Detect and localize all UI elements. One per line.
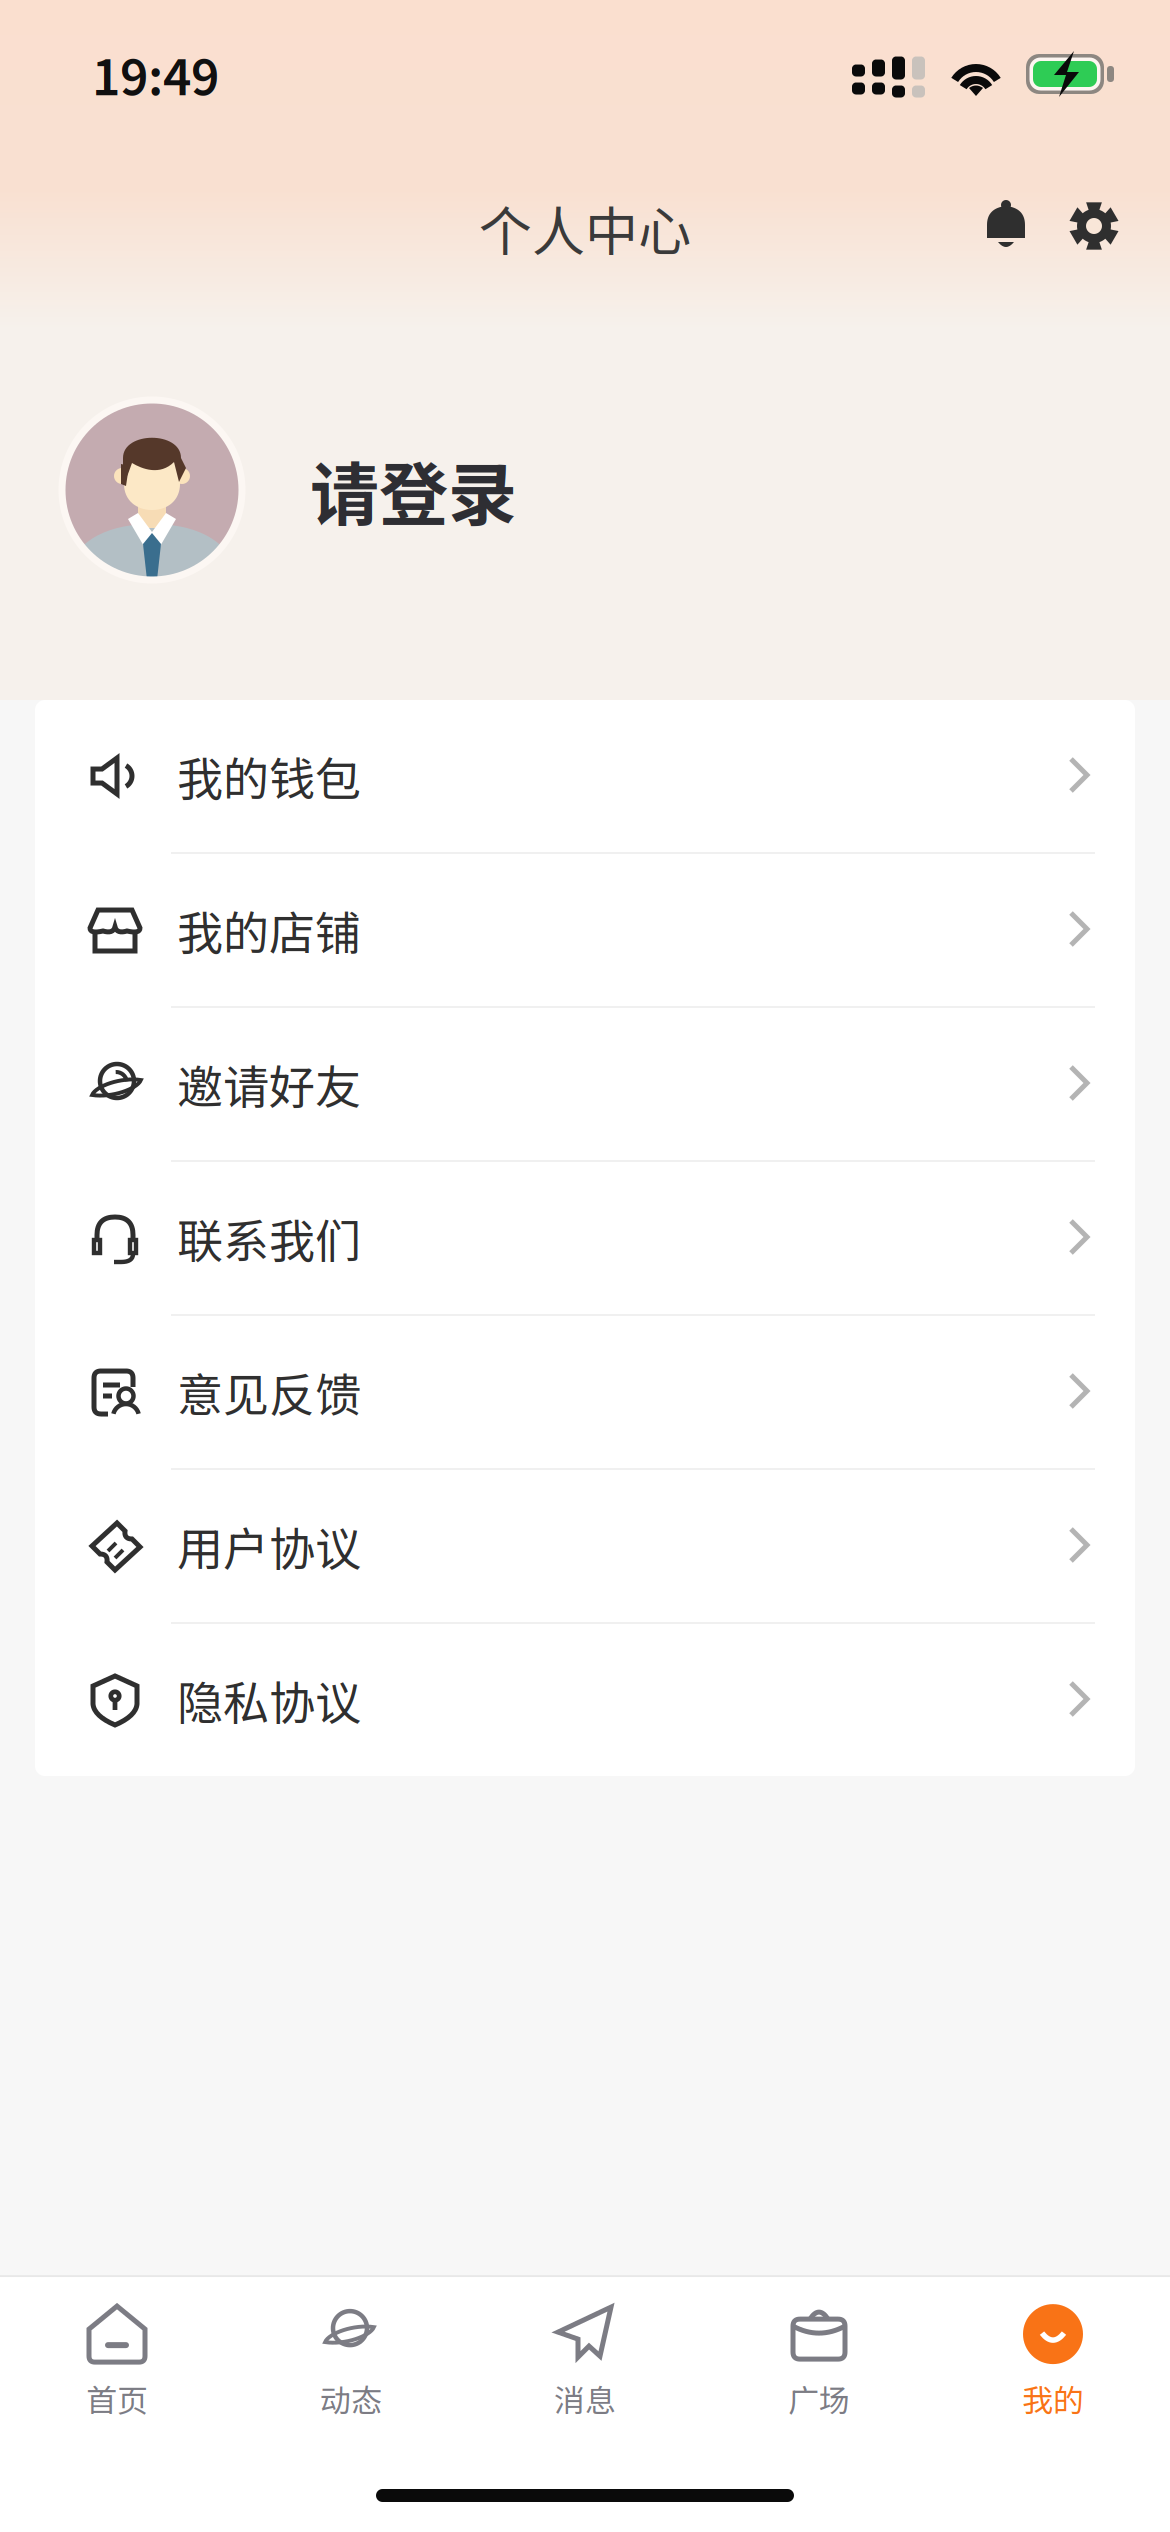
button[interactable]: 意见反馈 [35,1316,1135,1468]
staticText: 隐私协议 [177,1667,361,1733]
button[interactable]: 隐私协议 [35,1624,1135,1776]
button[interactable]: 通知 [982,200,1032,256]
staticText: 请登录 [310,440,517,540]
button[interactable]: 我的 [936,2277,1170,2429]
button[interactable]: 我的店铺 [35,854,1135,1006]
staticText: 首页 [86,2376,148,2421]
button[interactable]: 首页 [0,2277,234,2429]
button[interactable]: 邀请好友 [35,1008,1135,1160]
staticText: 动态 [320,2376,382,2421]
button[interactable]: 请登录 [0,400,1170,580]
staticText: 广场 [788,2376,850,2421]
staticText: 联系我们 [177,1205,361,1271]
staticText: 邀请好友 [177,1051,361,1117]
staticText: 19:49 [92,38,219,109]
button[interactable]: 广场 [702,2277,936,2429]
staticText: 我的钱包 [177,743,361,809]
button[interactable]: 消息 [468,2277,702,2429]
staticText: 我的 [1022,2376,1084,2421]
staticText: 我的店铺 [177,897,361,963]
button[interactable]: 动态 [234,2277,468,2429]
staticText: 个人中心 [479,190,691,266]
staticText: 消息 [554,2376,616,2421]
staticText: 意见反馈 [177,1359,361,1425]
button[interactable]: 用户协议 [35,1470,1135,1622]
button[interactable]: 设置 [1068,200,1122,256]
button[interactable]: 我的钱包 [35,700,1135,852]
button[interactable]: 联系我们 [35,1162,1135,1314]
staticText: 用户协议 [177,1513,361,1579]
